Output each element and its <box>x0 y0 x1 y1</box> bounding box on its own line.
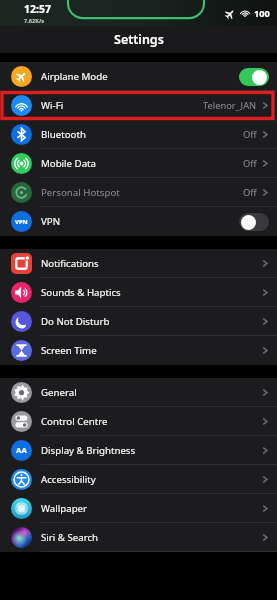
button[interactable]: Switch off <box>239 213 269 231</box>
button[interactable]: Wi-Fi <box>0 91 277 120</box>
button[interactable]: Switch on <box>239 68 269 86</box>
staticText: Siri & Search <box>41 531 99 544</box>
button[interactable]: Sounds & Haptics <box>0 278 277 307</box>
staticText: VPN <box>15 218 28 226</box>
staticText: Off <box>243 157 257 170</box>
button[interactable]: Notifications <box>0 249 277 278</box>
staticText: 100 <box>254 7 270 20</box>
staticText: Bluetooth <box>41 128 86 141</box>
button[interactable]: Mobile Data <box>0 149 277 178</box>
button[interactable]: General <box>0 378 277 407</box>
staticText: VPN <box>41 215 61 228</box>
staticText: Sounds & Haptics <box>41 286 121 299</box>
button[interactable]: AA <box>0 436 277 465</box>
staticText: Control Centre <box>41 415 108 428</box>
staticText: Notifications <box>41 257 99 270</box>
staticText: Mobile Data <box>41 157 97 170</box>
staticText: AA <box>16 445 27 456</box>
staticText: Wallpaper <box>41 502 88 515</box>
staticText: Settings <box>114 31 164 48</box>
button[interactable]: Wallpaper <box>0 494 277 523</box>
staticText: Off <box>243 186 257 199</box>
staticText: Do Not Disturb <box>41 315 110 328</box>
staticText: General <box>41 386 77 399</box>
button[interactable]: Bluetooth <box>0 120 277 149</box>
button[interactable]: Do Not Disturb <box>0 307 277 336</box>
button[interactable]: Accessibility <box>0 465 277 494</box>
button[interactable]: VPN <box>0 207 277 236</box>
staticText: Airplane Mode <box>41 70 108 83</box>
staticText: Off <box>243 128 257 141</box>
staticText: Personal Hotspot <box>41 186 120 199</box>
staticText: Screen Time <box>41 344 97 357</box>
staticText: Display & Brightness <box>41 444 136 457</box>
staticText: Wi-Fi <box>41 99 64 112</box>
staticText: 7.62K/s <box>24 17 45 25</box>
staticText: 12:57 <box>24 2 51 16</box>
button[interactable]: Control Centre <box>0 407 277 436</box>
staticText: Accessibility <box>41 473 96 486</box>
button[interactable]: Airplane Mode <box>0 62 277 91</box>
button[interactable]: Screen Time <box>0 336 277 365</box>
button[interactable]: Siri & Search <box>0 523 277 552</box>
staticText: Telenor_JAN <box>203 99 257 112</box>
button[interactable]: Personal Hotspot <box>0 178 277 207</box>
